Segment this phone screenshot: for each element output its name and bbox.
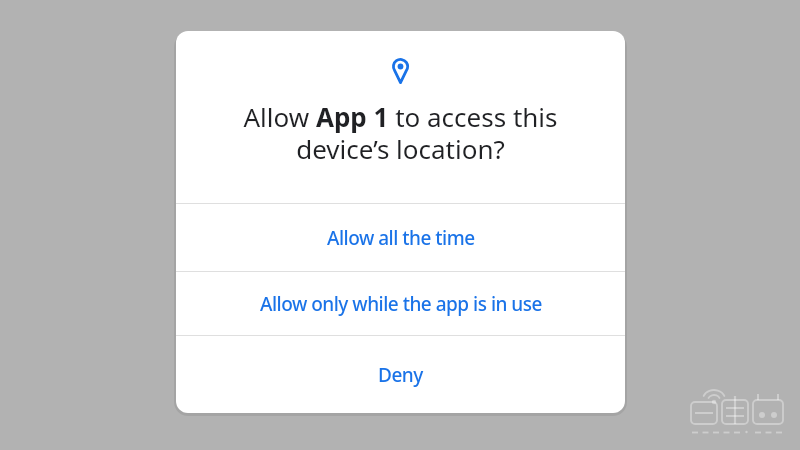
staticText: Allow App 1 to access this device’s loca… (243, 99, 558, 167)
button[interactable]: Allow only while the app is in use (176, 272, 625, 335)
staticText: Deny (378, 362, 423, 388)
button[interactable]: Deny (176, 336, 625, 413)
staticText: Allow all the time (327, 225, 475, 251)
staticText: Allow only while the app is in use (260, 291, 542, 317)
button[interactable]: Allow all the time (176, 204, 625, 271)
